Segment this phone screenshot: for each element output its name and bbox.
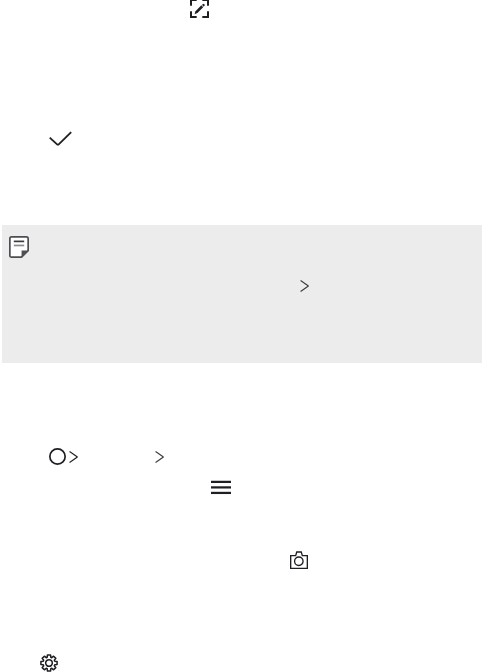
button[interactable]: Take photo: [275, 536, 323, 584]
button[interactable]: Settings: [25, 639, 73, 672]
button[interactable]: Open note: [283, 265, 325, 307]
button[interactable]: Edit note: [175, 0, 223, 32]
button[interactable]: Menu: [197, 470, 245, 502]
button[interactable]: [41, 440, 86, 473]
button[interactable]: Open note: [2, 225, 482, 363]
button[interactable]: More: [138, 440, 179, 473]
button[interactable]: Done: [36, 117, 84, 165]
